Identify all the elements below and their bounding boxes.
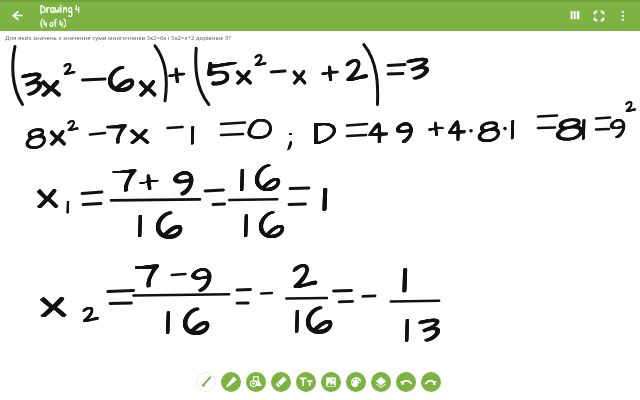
button[interactable]: More options [611,4,635,28]
button[interactable]: Undo [396,372,416,392]
button[interactable]: Redo [421,372,441,392]
button[interactable]: Back [8,8,24,24]
button[interactable]: Fullscreen [587,4,611,28]
button[interactable]: Pen [221,372,241,392]
button[interactable]: Text [296,372,316,392]
staticText: Для яких значень х значення суми многочл… [5,34,231,42]
button[interactable]: Columns view [563,4,587,28]
button[interactable]: Eraser [271,372,291,392]
staticText: Drawing 4 [40,1,80,17]
button[interactable]: Brush [196,372,216,392]
button[interactable]: Colour palette [346,372,366,392]
button[interactable]: Layers [371,372,391,392]
button[interactable]: Insert image [321,372,341,392]
staticText: (4 of 4) [40,17,67,31]
button[interactable]: Shapes [246,372,266,392]
